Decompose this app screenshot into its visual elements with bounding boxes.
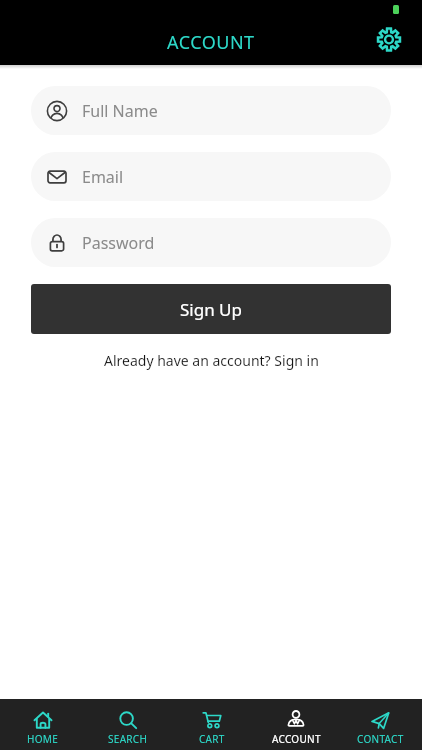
staticText: ACCOUNT [272,732,321,746]
staticText: Full Name [82,100,158,122]
button[interactable]: Sign Up [31,284,391,334]
staticText: HOME [27,732,59,746]
button[interactable]: Password [31,218,391,267]
button[interactable]: Already have an account? Sign in [0,351,422,370]
staticText: Email [82,166,124,188]
staticText: ACCOUNT [167,30,255,55]
button[interactable]: SEARCH [85,699,170,750]
staticText: Password [82,232,155,254]
staticText: SEARCH [108,732,148,746]
button[interactable]: Full Name [31,86,391,135]
staticText: CART [199,732,225,746]
staticText: Already have an account? Sign in [104,351,319,370]
button[interactable]: CART [170,699,254,750]
button[interactable]: ACCOUNT [254,699,338,750]
staticText: CONTACT [357,732,404,746]
button[interactable]: Email [31,152,391,201]
button[interactable]: HOME [0,699,85,750]
button[interactable] [376,26,402,52]
button[interactable]: CONTACT [338,699,422,750]
staticText: Sign Up [180,298,242,321]
